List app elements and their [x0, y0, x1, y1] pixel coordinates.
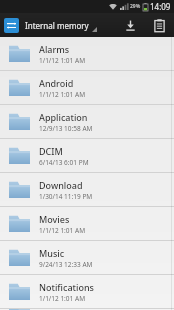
button[interactable]: Clipboard — [144, 13, 174, 37]
staticText: 29% — [130, 3, 141, 10]
staticText: 1/30/14 11:19 PM — [39, 192, 93, 201]
staticText: Application — [39, 111, 88, 123]
button[interactable]: Pictures — [0, 309, 174, 310]
staticText: Android — [39, 77, 74, 89]
staticText: Download — [39, 179, 83, 191]
staticText: 14:09 — [150, 1, 171, 12]
button[interactable]: DCIM — [0, 139, 174, 172]
staticText: 1/1/12 1:01 AM — [39, 294, 86, 303]
staticText: Notifications — [39, 281, 94, 293]
button[interactable]: Notifications — [0, 275, 174, 308]
button[interactable]: Android — [0, 71, 174, 104]
staticText: Internal memory — [25, 20, 89, 31]
button[interactable]: Internal memory — [0, 13, 101, 37]
button[interactable]: Movies — [0, 207, 174, 240]
button[interactable]: Download — [116, 13, 144, 37]
staticText: 12/9/13 10:58 AM — [39, 124, 93, 133]
staticText: 9/24/13 12:33 AM — [39, 260, 93, 269]
button[interactable]: Music — [0, 241, 174, 274]
staticText: Music — [39, 247, 65, 259]
staticText: Alarms — [39, 43, 70, 55]
staticText: 1/1/12 1:01 AM — [39, 90, 86, 99]
button[interactable]: Application — [0, 105, 174, 138]
staticText: 6/14/13 6:01 PM — [39, 158, 89, 167]
staticText: 1/1/12 1:01 AM — [39, 226, 86, 235]
staticText: 1/1/12 1:01 AM — [39, 56, 86, 65]
staticText: DCIM — [39, 145, 63, 157]
staticText: Movies — [39, 213, 70, 225]
button[interactable]: Alarms — [0, 37, 174, 70]
button[interactable]: Download — [0, 173, 174, 206]
